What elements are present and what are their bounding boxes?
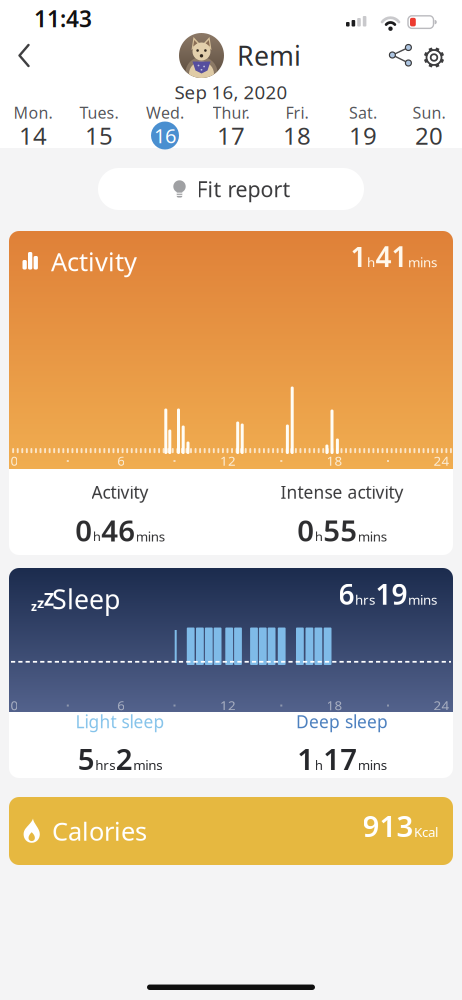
staticText: Sat. — [349, 102, 377, 123]
staticText: Z — [44, 587, 54, 610]
staticText: z — [37, 593, 44, 612]
staticText: Tues. — [79, 102, 118, 123]
staticText: Fit report — [196, 175, 290, 203]
staticText: Remi — [237, 38, 301, 73]
staticText: z — [31, 598, 37, 614]
staticText: 6 — [117, 452, 125, 469]
staticText: 46 — [101, 510, 135, 549]
staticText: 18 — [327, 696, 343, 714]
staticText: 12 — [220, 452, 236, 469]
staticText: 12 — [220, 696, 236, 714]
staticText: hrs — [95, 756, 115, 774]
staticText: mins — [358, 527, 387, 545]
staticText: 16 — [154, 122, 176, 149]
staticText: 1 — [297, 739, 314, 778]
staticText: Sep 16, 2020 — [174, 80, 287, 104]
staticText: Mon. — [13, 102, 52, 123]
staticText: 55 — [323, 510, 357, 549]
staticText: 18 — [327, 452, 343, 469]
button[interactable]: Back — [0, 32, 44, 78]
staticText: 17 — [323, 739, 357, 778]
button[interactable]: Fri. — [264, 105, 330, 149]
staticText: 20 — [415, 120, 443, 151]
staticText: Activity — [51, 245, 137, 278]
button[interactable]: 913 — [9, 797, 453, 865]
staticText: Light sleep — [75, 710, 164, 733]
staticText: h — [315, 527, 323, 545]
staticText: 24 — [433, 696, 449, 714]
staticText: h — [315, 756, 323, 774]
button[interactable]: Settings — [414, 37, 454, 77]
button[interactable]: Activity — [9, 231, 453, 555]
staticText: h — [367, 253, 375, 271]
staticText: Deep sleep — [296, 710, 388, 733]
button[interactable]: Tues. — [66, 105, 132, 149]
staticText: Thur. — [212, 102, 249, 123]
staticText: 41 — [375, 238, 407, 275]
button[interactable]: Sun. — [396, 105, 462, 149]
button[interactable]: Wed. — [132, 105, 198, 149]
staticText: 0 — [10, 696, 18, 714]
staticText: mins — [358, 756, 387, 774]
staticText: Activity — [91, 480, 148, 503]
button[interactable]: z — [9, 568, 453, 778]
staticText: 2 — [116, 739, 133, 778]
staticText: mins — [408, 591, 437, 608]
staticText: Intense activity — [280, 480, 403, 503]
staticText: Fri. — [285, 102, 308, 123]
staticText: 6 — [338, 575, 354, 612]
staticText: 24 — [433, 452, 449, 469]
staticText: 19 — [349, 120, 377, 151]
staticText: 1 — [350, 238, 366, 275]
staticText: h — [93, 527, 101, 545]
button[interactable]: Mon. — [0, 105, 66, 149]
button[interactable]: Thur. — [198, 105, 264, 149]
staticText: Sun. — [412, 102, 445, 123]
staticText: 913 — [362, 806, 413, 845]
staticText: Sleep — [52, 581, 120, 617]
staticText: Calories — [52, 814, 147, 848]
button[interactable]: Sat. — [330, 105, 396, 149]
button[interactable]: Share — [380, 35, 420, 75]
staticText: 11:43 — [34, 3, 92, 33]
staticText: Wed. — [146, 102, 184, 123]
staticText: 17 — [217, 120, 245, 151]
staticText: 6 — [117, 696, 125, 714]
staticText: 19 — [375, 575, 407, 612]
staticText: 0 — [297, 510, 314, 549]
staticText: hrs — [355, 591, 375, 608]
staticText: mins — [136, 527, 165, 545]
staticText: 0 — [10, 452, 18, 469]
staticText: Kcal — [414, 823, 438, 841]
button[interactable]: Fit report — [98, 168, 364, 210]
staticText: mins — [133, 756, 162, 774]
staticText: 5 — [78, 739, 95, 778]
staticText: 18 — [283, 120, 311, 151]
staticText: 14 — [19, 120, 47, 151]
staticText: 0 — [75, 510, 92, 549]
staticText: 15 — [85, 120, 113, 151]
staticText: mins — [408, 253, 437, 271]
